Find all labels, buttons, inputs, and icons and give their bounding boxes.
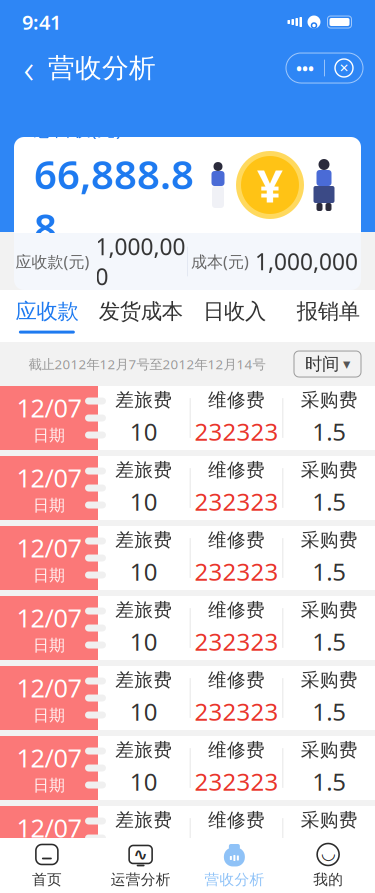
staticText: 差旅费 — [115, 599, 172, 621]
button[interactable]: 发货成本 — [94, 290, 188, 342]
staticText: 9:41 — [22, 9, 61, 35]
staticText: 差旅费 — [115, 529, 172, 551]
staticText: 10 — [130, 625, 158, 657]
button[interactable]: 12/07 — [0, 806, 375, 870]
staticText: 10 — [130, 415, 158, 447]
staticText: 维修费 — [208, 389, 265, 411]
staticText: 采购费 — [301, 809, 358, 831]
staticText: 10 — [130, 835, 158, 867]
staticText: 1.5 — [312, 555, 346, 587]
staticText: ¥ — [257, 155, 283, 215]
staticText: 日期 — [33, 425, 65, 445]
staticText: 采购费 — [301, 389, 358, 411]
staticText: 232323 — [194, 695, 278, 727]
staticText: ✕ — [339, 61, 349, 75]
staticText: 成本(元) — [191, 251, 249, 272]
staticText: 10 — [130, 695, 158, 727]
staticText: ••• — [296, 57, 314, 79]
staticText: 232323 — [194, 765, 278, 797]
staticText: 12/07 — [16, 671, 81, 704]
staticText: ∿ — [133, 845, 148, 864]
staticText: 采购费 — [301, 739, 358, 761]
staticText: 日期 — [33, 705, 65, 725]
staticText: 232323 — [194, 415, 278, 447]
staticText: 采购费 — [301, 669, 358, 691]
staticText: 维修费 — [208, 529, 265, 551]
staticText: 维修费 — [208, 739, 265, 761]
staticText: ▾ — [343, 356, 350, 372]
staticText: 采购费 — [301, 599, 358, 621]
staticText: 232323 — [194, 485, 278, 517]
button[interactable]: 首页 — [0, 838, 94, 893]
staticText: 采购费 — [301, 529, 358, 551]
button[interactable]: 12/07 — [0, 666, 375, 730]
staticText: 差旅费 — [115, 809, 172, 831]
staticText: 日期 — [33, 565, 65, 585]
button[interactable]: 12/07 — [0, 456, 375, 520]
staticText: 10 — [130, 555, 158, 587]
staticText: 1.5 — [312, 415, 346, 447]
staticText: 12/07 — [16, 461, 81, 494]
staticText: 12/07 — [16, 391, 81, 424]
staticText: 日期 — [33, 845, 65, 865]
button[interactable]: 12/07 — [0, 736, 375, 800]
staticText: 运营分析 — [111, 870, 171, 888]
button[interactable]: 报销单 — [281, 290, 375, 342]
staticText: 维修费 — [208, 459, 265, 481]
staticText: 时间 — [305, 353, 339, 375]
staticText: 差旅费 — [115, 669, 172, 691]
staticText: 总营收(元) — [34, 116, 122, 141]
staticText: 维修费 — [208, 669, 265, 691]
button[interactable]: 日收入 — [187, 290, 281, 342]
button[interactable]: 应收款 — [0, 290, 94, 342]
staticText: 12/07 — [16, 811, 81, 844]
staticText: 采购费 — [301, 459, 358, 481]
button[interactable]: 12/07 — [0, 596, 375, 660]
staticText: 营收分析 — [48, 52, 156, 84]
staticText: 232323 — [194, 835, 278, 867]
staticText: 首页 — [32, 870, 62, 888]
staticText: 日收入 — [203, 298, 266, 325]
staticText: 1.5 — [312, 485, 346, 517]
staticText: 12/07 — [16, 601, 81, 634]
staticText: 1.5 — [312, 765, 346, 797]
staticText: 10 — [130, 765, 158, 797]
button[interactable]: ∿ — [94, 838, 188, 893]
staticText: 截止2012年12月7号至2012年12月14号 — [28, 355, 265, 373]
staticText: ◡ — [322, 843, 335, 863]
staticText: 10 — [130, 485, 158, 517]
staticText: 12/07 — [16, 531, 81, 564]
staticText: 1.5 — [312, 695, 346, 727]
staticText: 应收款(元) — [15, 251, 89, 272]
staticText: 1,000,000 — [95, 231, 185, 292]
staticText: 12/07 — [16, 741, 81, 774]
staticText: 1.5 — [312, 625, 346, 657]
staticText: 发货成本 — [99, 298, 183, 325]
staticText: 日期 — [33, 495, 65, 515]
button[interactable]: ◡ — [281, 838, 375, 893]
staticText: 232323 — [194, 555, 278, 587]
staticText: 66,888.88 — [34, 147, 194, 253]
staticText: 应收款 — [15, 298, 78, 325]
staticText: 日期 — [33, 775, 65, 795]
staticText: 日期 — [33, 635, 65, 655]
staticText: 232323 — [194, 625, 278, 657]
staticText: 营收分析 — [204, 870, 264, 888]
button[interactable]: Close — [325, 53, 363, 83]
staticText: 差旅费 — [115, 459, 172, 481]
staticText: 报销单 — [297, 298, 360, 325]
button[interactable]: 12/07 — [0, 526, 375, 590]
button[interactable]: 营收分析 — [187, 838, 281, 893]
staticText: 1.5 — [312, 835, 346, 867]
staticText: 维修费 — [208, 599, 265, 621]
button[interactable]: 12/07 — [0, 386, 375, 450]
button[interactable]: Back — [12, 48, 46, 88]
button[interactable]: More options — [286, 53, 324, 83]
staticText: 差旅费 — [115, 389, 172, 411]
staticText: ‹ — [23, 41, 34, 94]
staticText: 差旅费 — [115, 739, 172, 761]
staticText: 1,000,000 — [255, 246, 358, 276]
button[interactable]: 时间 — [294, 351, 361, 377]
staticText: 维修费 — [208, 809, 265, 831]
staticText: 我的 — [313, 870, 343, 888]
